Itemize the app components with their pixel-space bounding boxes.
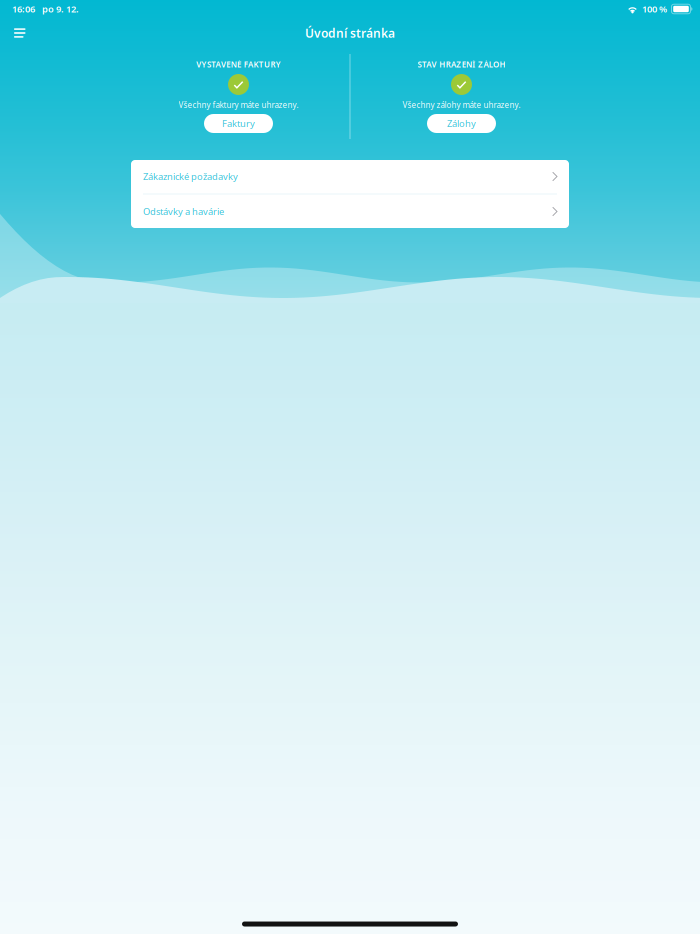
staticText: po 9. 12.: [42, 3, 79, 15]
staticText: VYSTAVENÉ FAKTURY: [196, 59, 281, 70]
staticText: 16:06: [12, 3, 35, 15]
button[interactable]: Odstávky a havárie: [131, 194, 569, 228]
staticText: Úvodní stránka: [305, 25, 395, 41]
button[interactable]: Zákaznické požadavky: [131, 159, 569, 193]
button[interactable]: Faktury: [204, 114, 273, 133]
staticText: Všechny faktury máte uhrazeny.: [178, 100, 298, 110]
staticText: STAV HRAZENÍ ZÁLOH: [417, 59, 505, 70]
staticText: Odstávky a havárie: [143, 205, 224, 218]
staticText: Všechny zálohy máte uhrazeny.: [402, 100, 520, 110]
staticText: Faktury: [222, 117, 255, 130]
button[interactable]: Menu: [14, 23, 38, 43]
staticText: Zálohy: [447, 117, 476, 130]
staticText: 100 %: [642, 3, 667, 15]
button[interactable]: Zálohy: [427, 114, 496, 133]
staticText: Zákaznické požadavky: [143, 170, 238, 183]
